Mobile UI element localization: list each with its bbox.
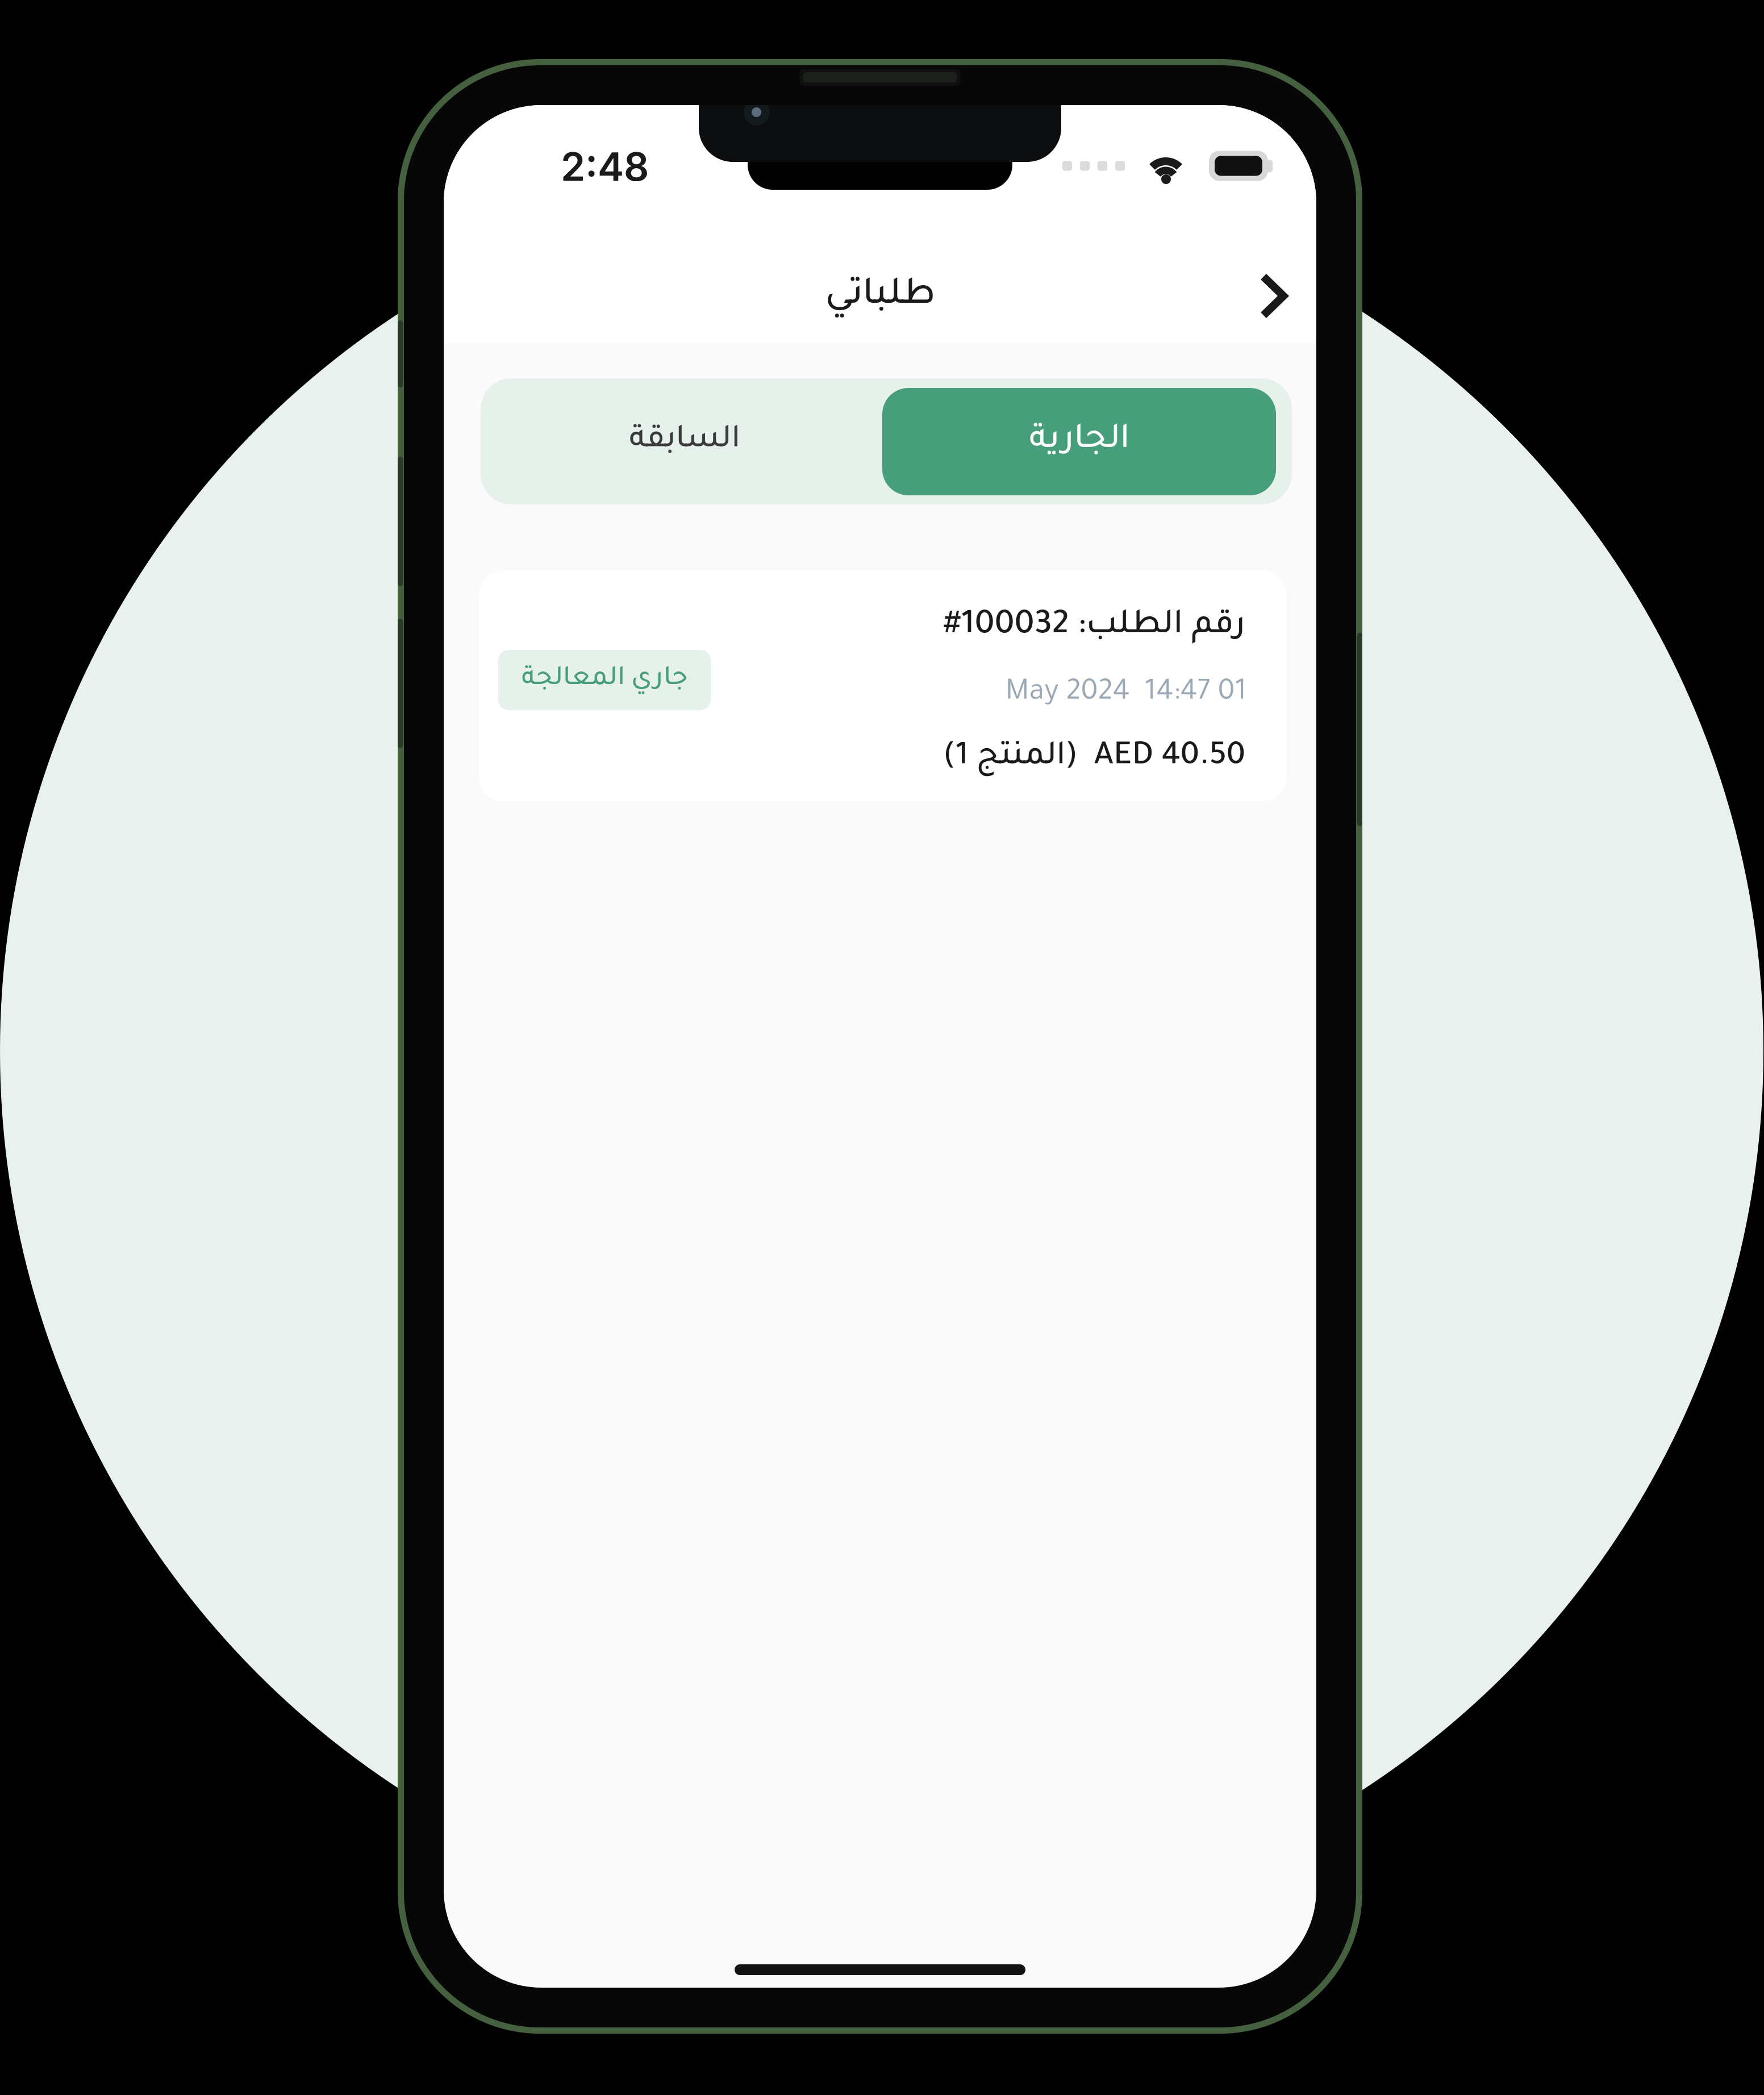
staticText: ‫طلباتي‬: [825, 277, 935, 317]
staticText: ‫جاري المعالجة‬: [521, 666, 688, 694]
button[interactable]: ‫رقم الطلب: ‪#100032‬‬: [479, 570, 1287, 802]
button[interactable]: ‫الجارية‬: [882, 388, 1276, 495]
button[interactable]: ‫السابقة‬: [483, 378, 886, 504]
staticText: ‫السابقة‬: [629, 425, 740, 458]
button[interactable]: Back: [1239, 254, 1308, 337]
staticText: ‫‪AED 40.50‬ (المنتج 1)‬: [943, 741, 1245, 775]
staticText: ‫رقم الطلب: ‪#100032‬‬: [943, 609, 1245, 645]
staticText: ‫01 14:47 May 2024‬: [1005, 679, 1246, 710]
staticText: ‫الجارية‬: [1029, 423, 1129, 460]
staticText: 2:48: [561, 143, 649, 190]
